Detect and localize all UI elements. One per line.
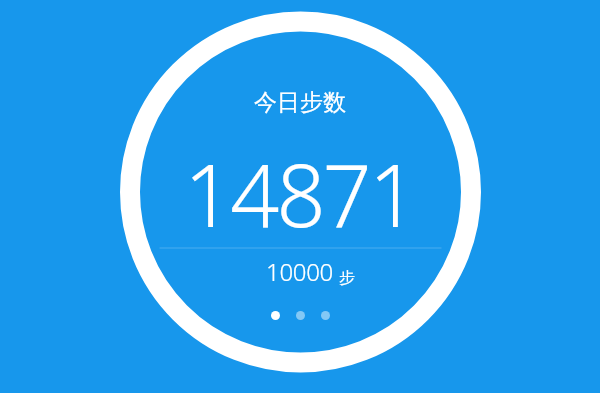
staticText: 步 [339, 268, 355, 288]
staticText: 10000 [266, 255, 334, 288]
button[interactable]: Page 3 [313, 304, 338, 326]
staticText: 14871 [184, 135, 416, 252]
button[interactable]: 今日步数 14871, 目标 10000 步 [120, 12, 481, 373]
button[interactable]: Page 1 [263, 304, 288, 326]
button[interactable]: Page 2 [288, 304, 313, 326]
staticText: 今日步数 [254, 88, 346, 117]
